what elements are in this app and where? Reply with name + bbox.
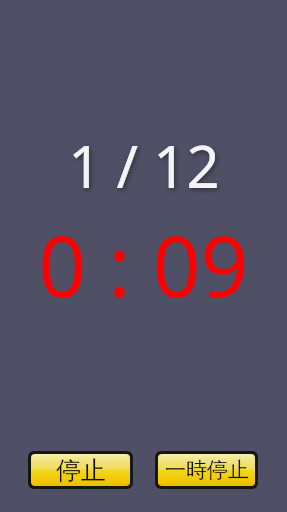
button[interactable]: 一時停止 [155,451,258,489]
staticText: 0 : 09 [38,207,249,321]
staticText: 一時停止 [165,457,249,483]
staticText: 停止 [56,455,106,486]
staticText: 1 / 12 [68,126,220,205]
button[interactable]: 停止 [28,451,133,489]
